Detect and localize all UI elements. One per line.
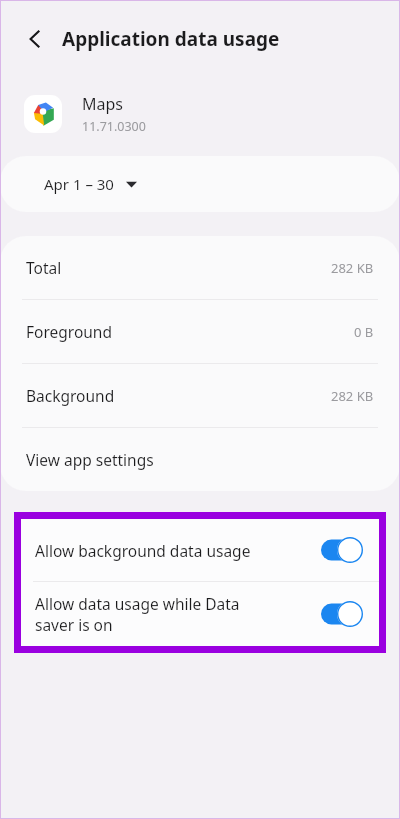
button[interactable]: Toggle on	[321, 601, 363, 627]
button[interactable]: Total	[0, 236, 400, 299]
staticText: 11.71.0300	[82, 118, 146, 135]
staticText: 282 KB	[331, 387, 374, 405]
button[interactable]: Back	[14, 18, 56, 60]
staticText: Apr 1 – 30	[44, 174, 114, 194]
staticText: 282 KB	[331, 259, 374, 277]
staticText: 0 B	[354, 323, 374, 341]
button[interactable]: View app settings	[0, 428, 400, 491]
button[interactable]: Allow background data usage	[21, 519, 379, 581]
staticText: Application data usage	[62, 26, 280, 52]
button[interactable]: Allow data usage while Data	[21, 582, 379, 646]
button[interactable]: Foreground	[0, 300, 400, 363]
button[interactable]: Apr 1 – 30	[0, 156, 400, 212]
staticText: View app settings	[26, 449, 154, 470]
button[interactable]: Toggle on	[321, 537, 363, 563]
button[interactable]: Maps	[0, 78, 400, 150]
staticText: Allow background data usage	[35, 540, 251, 561]
staticText: saver is on	[35, 614, 113, 635]
staticText: Maps	[82, 93, 123, 115]
button[interactable]: Background	[0, 364, 400, 427]
staticText: Total	[26, 257, 62, 278]
staticText: Foreground	[26, 321, 112, 342]
staticText: Background	[26, 385, 115, 406]
staticText: Allow data usage while Data	[35, 593, 240, 614]
